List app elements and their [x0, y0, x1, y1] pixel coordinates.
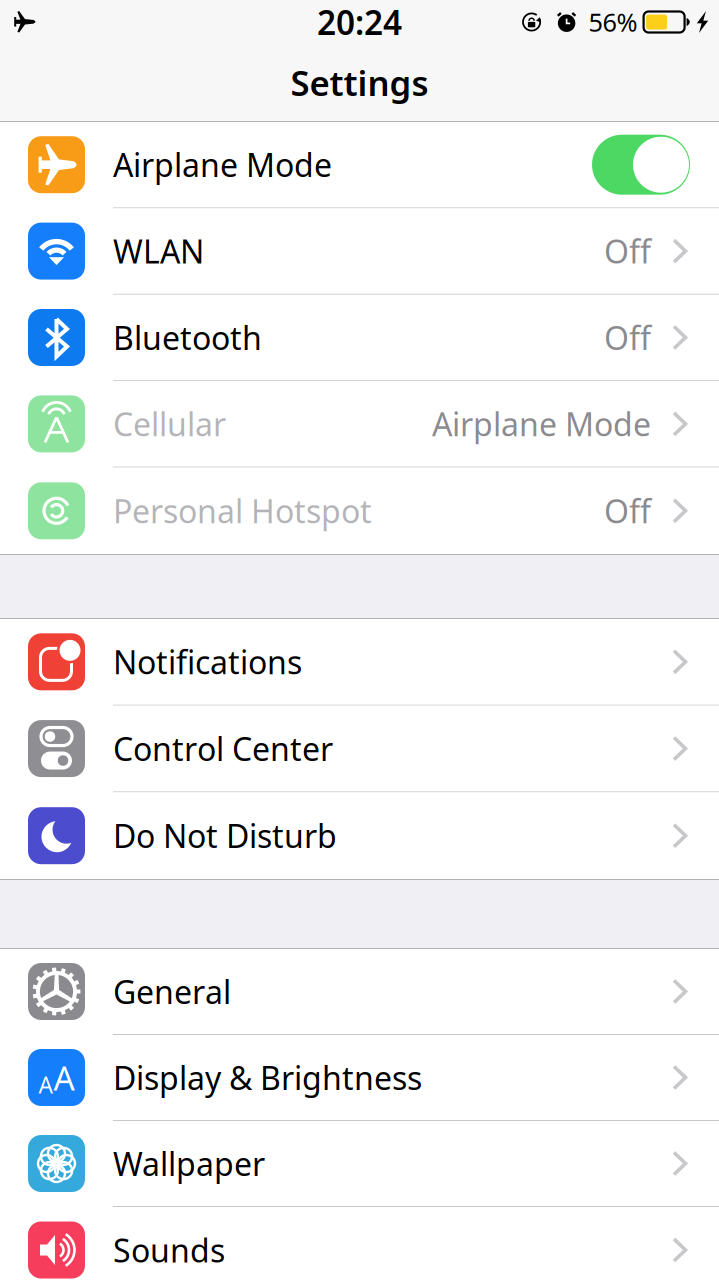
staticText: General — [113, 970, 231, 1013]
button[interactable]: General — [0, 949, 719, 1035]
staticText: Off — [604, 230, 651, 272]
button[interactable]: Airplane Mode — [0, 122, 719, 208]
staticText: Bluetooth — [113, 316, 262, 359]
staticText: Settings — [290, 59, 428, 105]
staticText: 56% — [589, 5, 638, 39]
button[interactable]: Do Not Disturb — [0, 792, 719, 879]
staticText: 20:24 — [317, 0, 402, 44]
staticText: Cellular — [113, 403, 226, 445]
staticText: Off — [604, 490, 651, 532]
button[interactable]: WLAN — [0, 208, 719, 295]
button[interactable]: Notifications — [0, 619, 719, 706]
staticText: Airplane Mode — [432, 403, 651, 445]
staticText: WLAN — [113, 230, 204, 272]
staticText: Off — [604, 316, 651, 359]
staticText: Control Center — [113, 727, 333, 770]
button[interactable]: Cellular — [0, 381, 719, 468]
staticText: Wallpaper — [113, 1142, 265, 1185]
staticText: A — [38, 1069, 52, 1100]
button[interactable]: Control Center — [0, 706, 719, 792]
button[interactable]: Bluetooth — [0, 295, 719, 381]
button[interactable]: Wallpaper — [0, 1121, 719, 1207]
staticText: Display & Brightness — [113, 1056, 422, 1099]
staticText: Personal Hotspot — [113, 490, 372, 532]
button[interactable]: Personal Hotspot — [0, 468, 719, 554]
staticText: Airplane Mode — [113, 143, 332, 186]
staticText: A — [53, 1055, 74, 1100]
staticText: Do Not Disturb — [113, 814, 337, 857]
button[interactable]: Sounds — [0, 1207, 719, 1280]
staticText: Sounds — [113, 1229, 225, 1271]
staticText: Notifications — [113, 641, 302, 683]
button[interactable]: A — [0, 1035, 719, 1121]
